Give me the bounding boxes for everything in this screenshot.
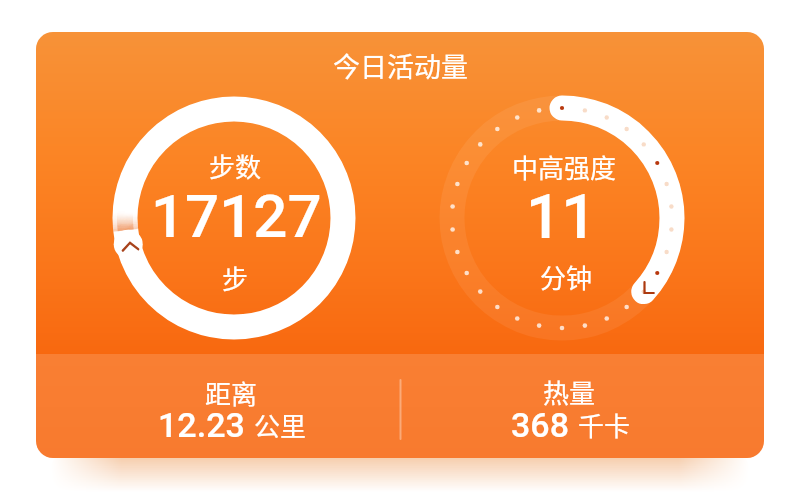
staticText: 17127: [151, 181, 322, 251]
button[interactable]: [36, 32, 764, 458]
staticText: 368: [511, 405, 569, 445]
staticText: 分钟: [540, 258, 593, 296]
staticText: 中高强度: [512, 148, 617, 186]
staticText: 12.23: [158, 405, 245, 445]
staticText: 公里: [254, 406, 307, 444]
staticText: 步数: [209, 147, 262, 185]
staticText: 热量: [543, 373, 596, 411]
staticText: 距离: [205, 374, 258, 412]
staticText: 千卡: [578, 406, 631, 444]
staticText: 今日活动量: [333, 46, 468, 85]
staticText: 11: [526, 180, 597, 253]
staticText: 步: [222, 259, 249, 297]
